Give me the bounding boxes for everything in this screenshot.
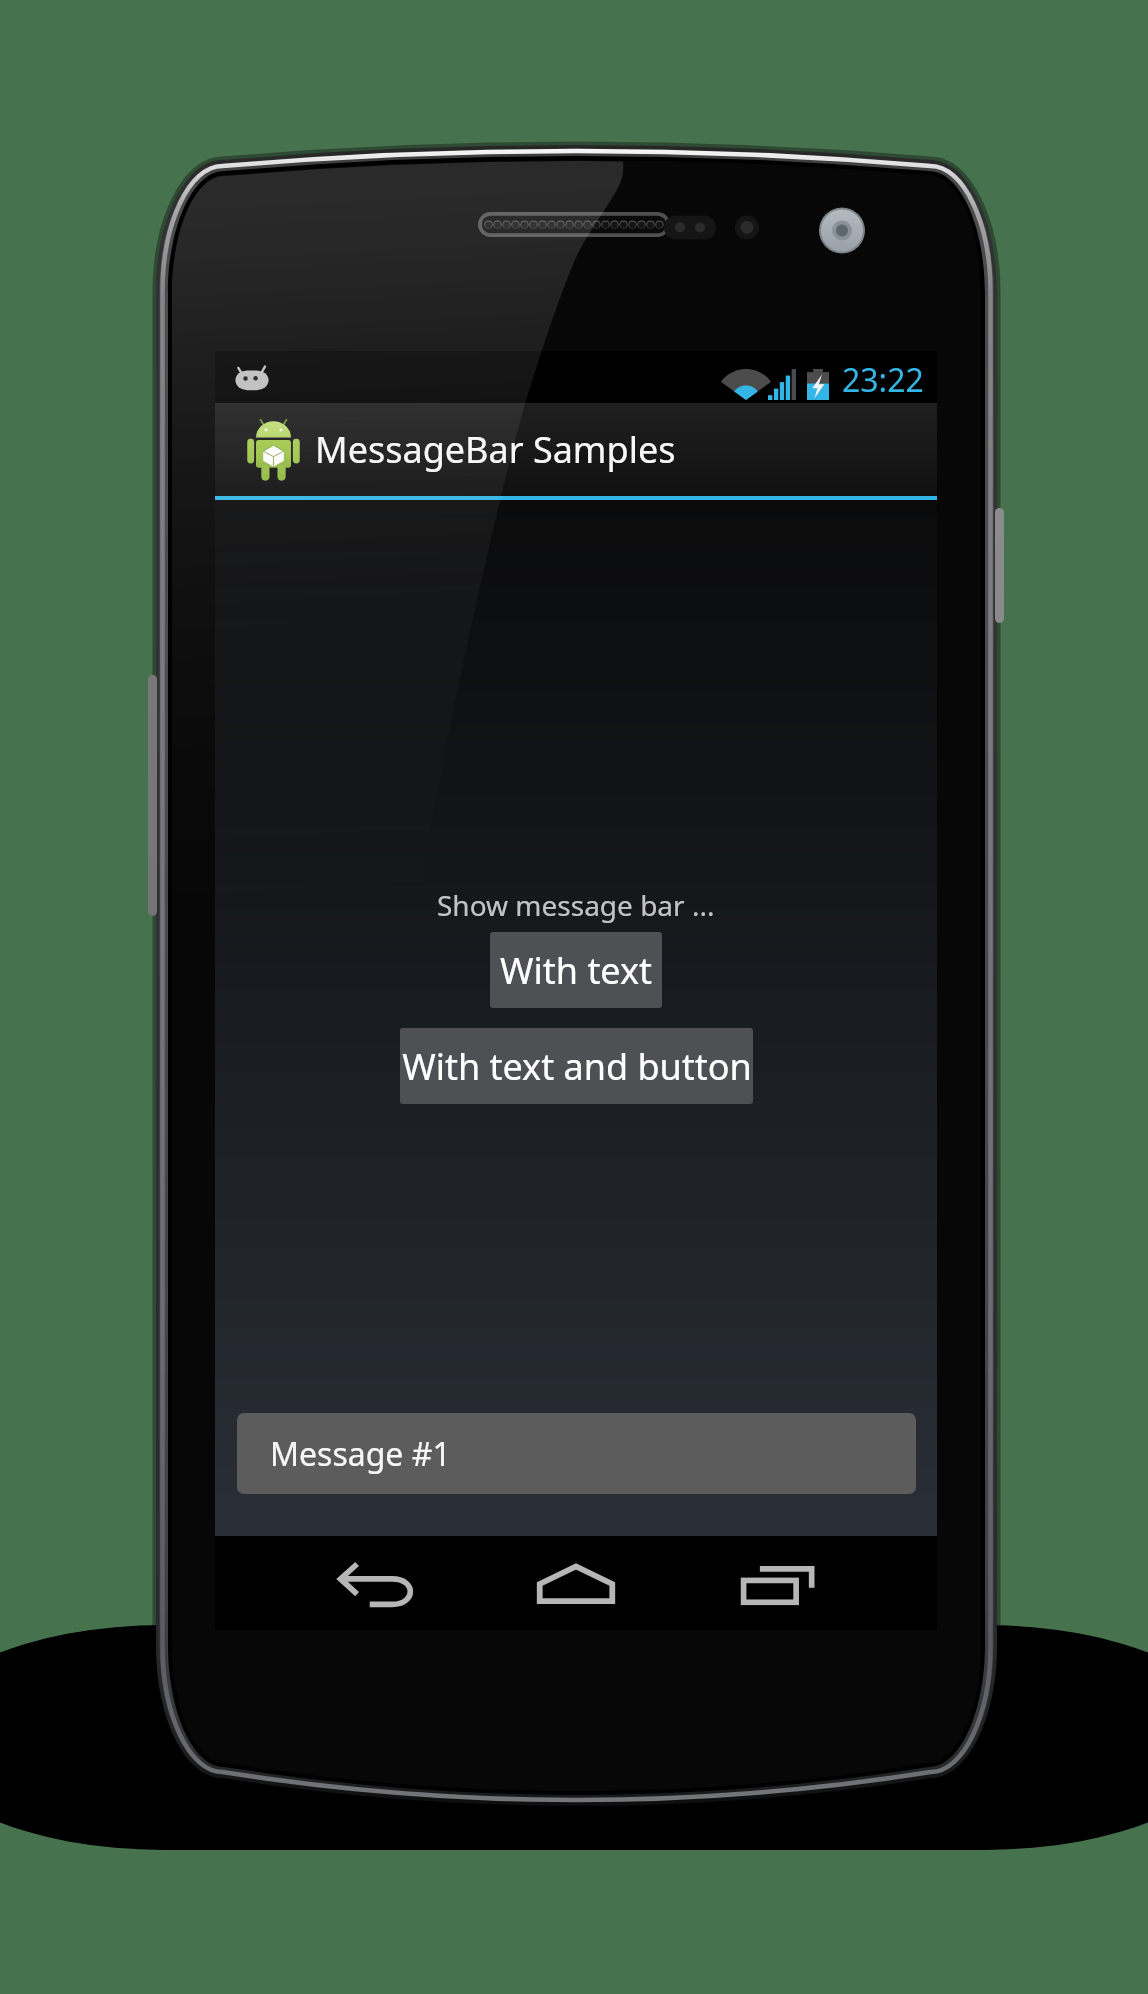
staticText: With text xyxy=(500,946,652,995)
staticText: Show message bar ... xyxy=(437,886,715,924)
staticText: Message #1 xyxy=(270,1432,451,1476)
staticText: 23:22 xyxy=(842,358,924,402)
button[interactable]: Back xyxy=(215,1536,456,1630)
button[interactable]: With text and button xyxy=(400,1028,753,1104)
button[interactable]: Message #1 xyxy=(237,1413,916,1494)
staticText: MessageBar Samples xyxy=(315,425,676,474)
button[interactable]: Home xyxy=(456,1536,696,1630)
staticText: With text and button xyxy=(402,1042,752,1091)
button[interactable]: With text xyxy=(490,932,662,1008)
button[interactable]: Recents xyxy=(696,1536,937,1630)
